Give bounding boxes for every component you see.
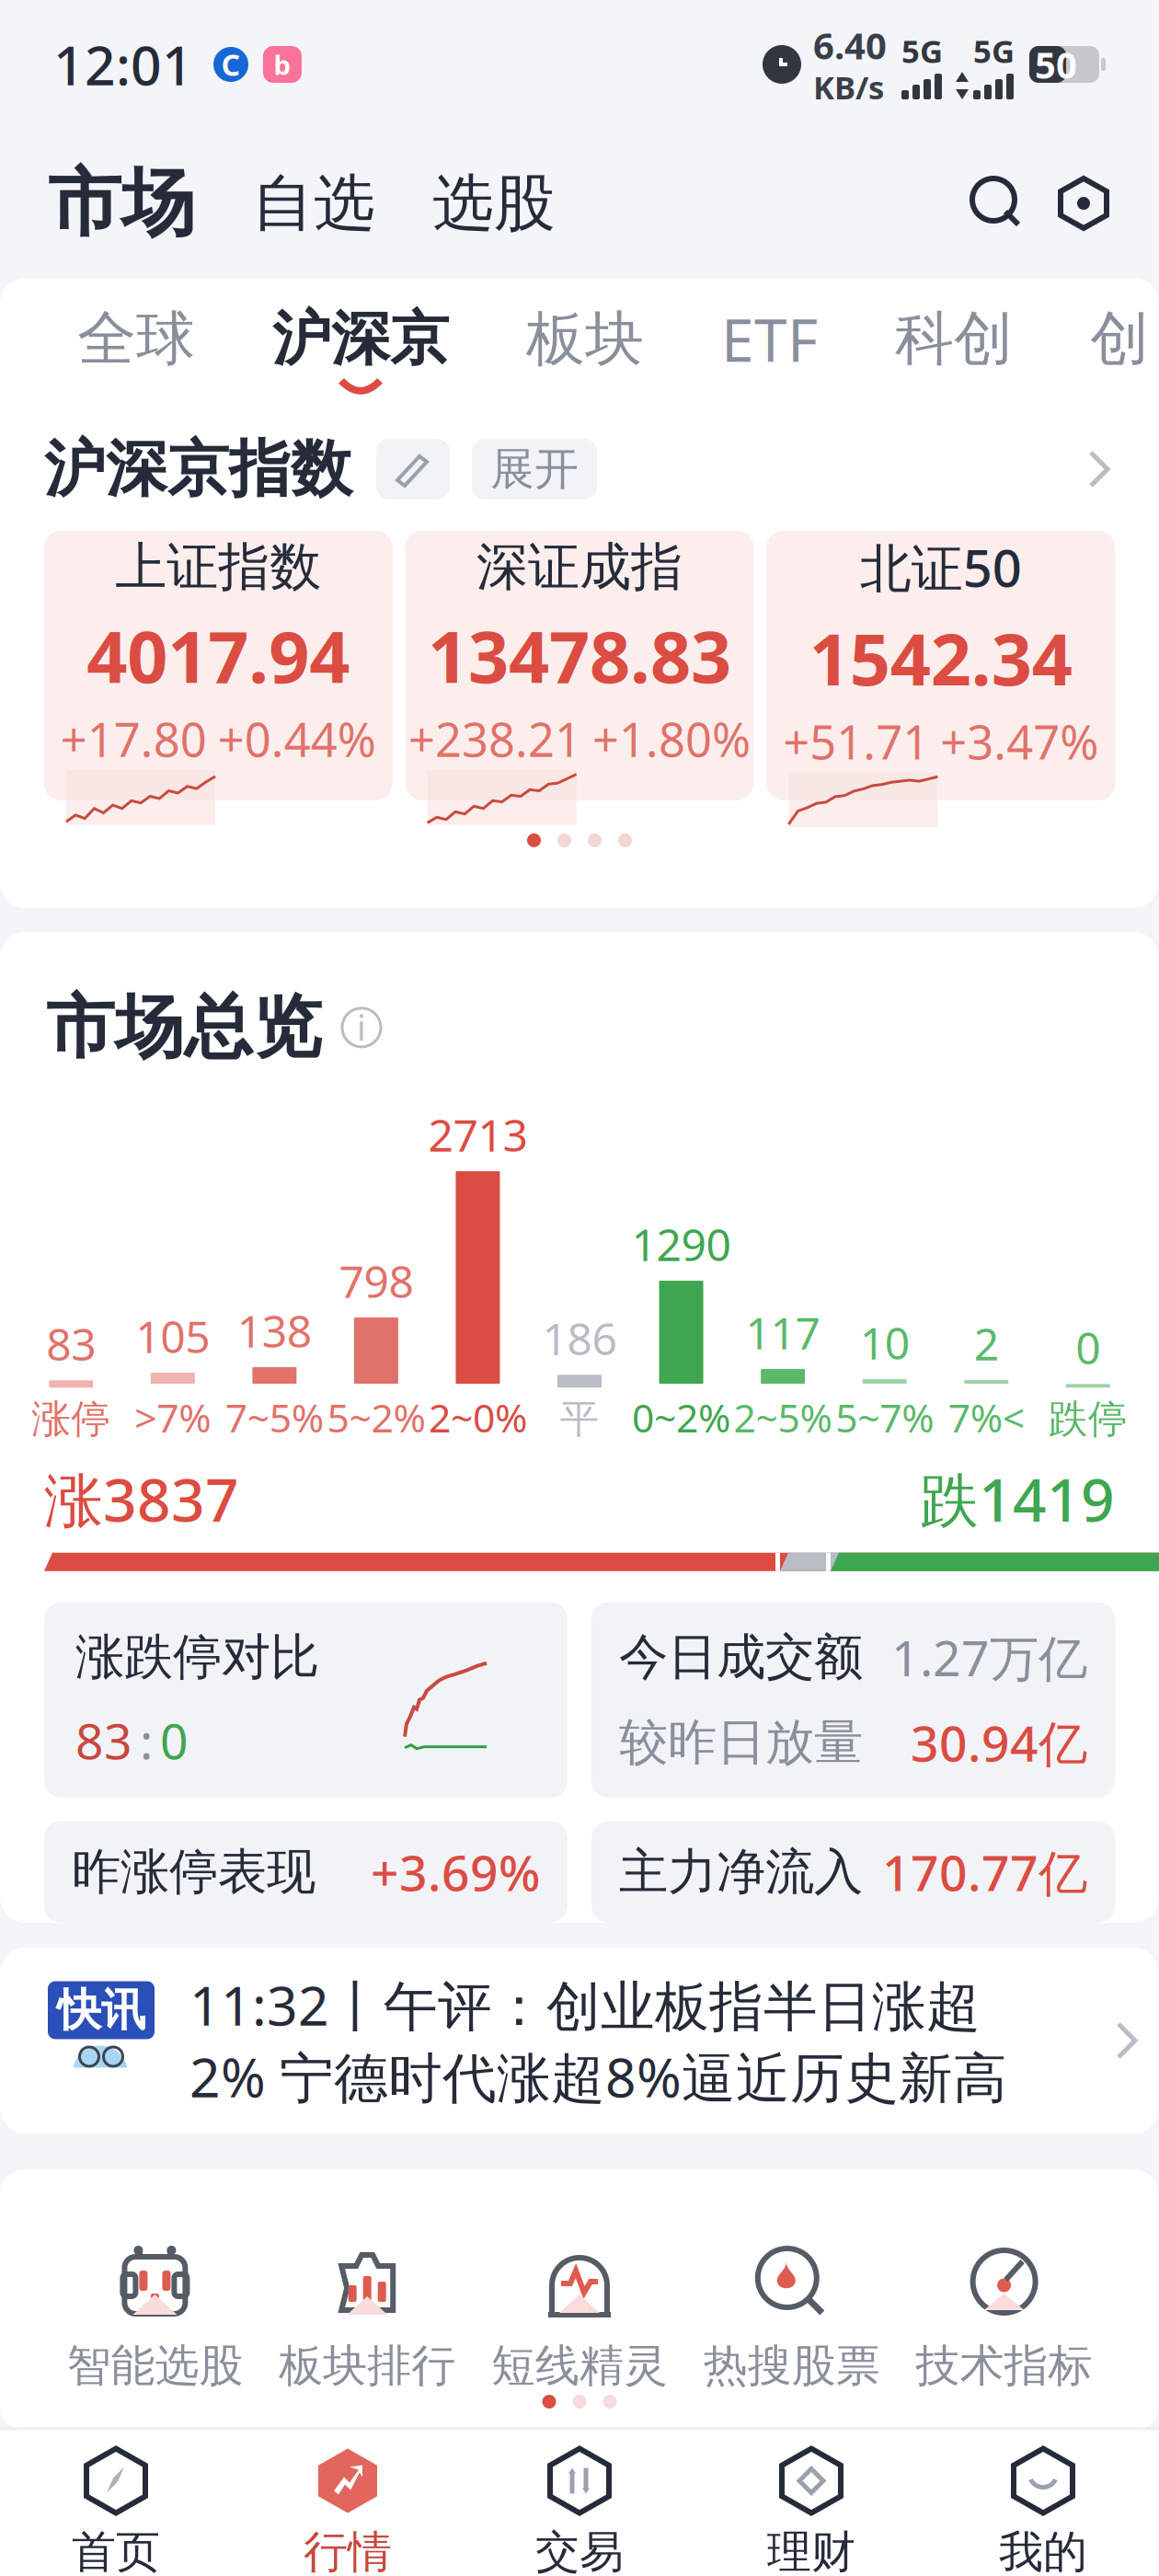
button[interactable]: 涨跌停对比	[44, 1602, 568, 1797]
staticText: 上证指数	[115, 535, 321, 599]
button[interactable]: 选股	[375, 166, 556, 241]
staticText: >7%	[135, 1391, 211, 1443]
staticText: 170.77亿	[882, 1839, 1087, 1904]
staticText: 市场总览	[46, 985, 322, 1070]
staticText: 选股	[432, 166, 556, 241]
button[interactable]: 板块排行	[261, 2247, 473, 2393]
staticText: 涨3837	[44, 1460, 239, 1538]
staticText: 今日成交额	[619, 1627, 863, 1687]
staticText: 创	[1090, 303, 1149, 375]
button[interactable]: 行情	[232, 2444, 464, 2576]
button[interactable]: 板块	[488, 303, 683, 397]
button[interactable]: 理财	[695, 2444, 927, 2576]
staticText: 2~5%	[734, 1391, 832, 1443]
staticText: 智能选股	[67, 2339, 243, 2393]
button[interactable]: 全球	[39, 303, 234, 397]
staticText: 沪深京指数	[44, 431, 352, 507]
staticText: 深证成指	[476, 535, 683, 599]
button[interactable]: 说明	[340, 1006, 383, 1049]
staticText: 798	[339, 1251, 413, 1310]
staticText: 跌1419	[920, 1460, 1115, 1538]
staticText: 涨停	[32, 1395, 111, 1443]
button[interactable]: 自选	[195, 166, 375, 241]
button[interactable]: 科创	[856, 303, 1051, 397]
staticText: 12:01	[53, 29, 193, 100]
staticText: 快讯	[57, 1983, 145, 2037]
staticText: 13478.83	[428, 608, 731, 702]
staticText: +3.69%	[371, 1839, 540, 1904]
staticText: KB/s	[813, 66, 884, 108]
staticText: 50	[1035, 40, 1077, 89]
staticText: 板块排行	[279, 2339, 456, 2393]
staticText: 0	[1075, 1318, 1100, 1377]
staticText: 30.94亿	[911, 1710, 1087, 1775]
button[interactable]: 深证成指	[405, 531, 754, 800]
staticText: +17.80	[61, 708, 207, 770]
staticText: C	[221, 45, 241, 84]
staticText: 沪深京	[272, 303, 449, 375]
staticText: 7%<	[948, 1391, 1024, 1443]
staticText: 5~2%	[327, 1391, 425, 1443]
staticText: 科创	[895, 303, 1013, 375]
staticText: 板块	[526, 303, 644, 375]
staticText: 行情	[304, 2525, 392, 2576]
staticText: 热搜股票	[703, 2339, 880, 2393]
staticText: 自选	[252, 166, 375, 241]
button[interactable]: 短线精灵	[473, 2247, 686, 2393]
staticText: 主力净流入	[619, 1842, 863, 1902]
staticText: 4017.94	[87, 608, 350, 702]
staticText: +51.71	[783, 711, 929, 772]
button[interactable]: 编辑	[352, 439, 450, 499]
button[interactable]: 昨涨停表现	[44, 1821, 568, 1923]
staticText: 6.40	[813, 21, 887, 69]
button[interactable]: 搜索	[970, 176, 1025, 231]
button[interactable]: 沪深京	[234, 303, 488, 397]
button[interactable]: 交易	[464, 2444, 695, 2576]
staticText: 105	[135, 1307, 210, 1365]
button[interactable]: 技术指标	[898, 2247, 1110, 2393]
staticText: 5G	[973, 29, 1015, 72]
button[interactable]: 主力净流入	[591, 1821, 1115, 1923]
staticText: 跌停	[1048, 1395, 1127, 1443]
staticText: 83	[46, 1314, 96, 1373]
staticText: 理财	[767, 2525, 855, 2576]
staticText: 2~0%	[429, 1391, 527, 1443]
button[interactable]: 智能选股	[49, 2247, 261, 2393]
staticText: 0	[160, 1708, 189, 1773]
staticText: 短线精灵	[491, 2339, 668, 2393]
staticText: 1.27万亿	[891, 1625, 1087, 1690]
button[interactable]: 市场	[48, 158, 195, 249]
staticText: +3.47%	[940, 711, 1098, 772]
staticText: +238.21	[408, 708, 581, 770]
staticText: 1542.34	[809, 611, 1072, 705]
staticText: 83	[75, 1708, 132, 1773]
staticText: 5G	[901, 29, 943, 72]
button[interactable]: 创	[1051, 303, 1159, 397]
button[interactable]: 首页	[0, 2444, 232, 2576]
button[interactable]: 北证50	[767, 531, 1115, 800]
staticText: 10	[860, 1313, 909, 1372]
button[interactable]: ETF	[683, 300, 856, 400]
staticText: 0~2%	[632, 1391, 730, 1443]
staticText: 我的	[999, 2525, 1087, 2576]
staticText: 138	[237, 1301, 312, 1360]
staticText: ETF	[721, 300, 818, 378]
button[interactable]: 上证指数	[44, 531, 392, 800]
staticText: :	[140, 1708, 153, 1773]
button[interactable]: 快讯	[0, 1948, 1159, 2133]
button[interactable]: 我的	[927, 2444, 1159, 2576]
staticText: 平	[560, 1395, 599, 1443]
staticText: 展开	[490, 442, 579, 496]
staticText: 交易	[535, 2525, 624, 2576]
staticText: 186	[542, 1309, 617, 1367]
staticText: 全球	[77, 303, 195, 375]
button[interactable]: 展开	[450, 439, 597, 499]
staticText: i	[357, 1005, 366, 1050]
staticText: 昨涨停表现	[72, 1842, 316, 1902]
button[interactable]: 设置	[1025, 174, 1111, 233]
button[interactable]: 热搜股票	[686, 2247, 898, 2393]
staticText: 涨跌停对比	[75, 1627, 319, 1687]
button[interactable]: 今日成交额	[591, 1602, 1115, 1797]
staticText: 北证50	[860, 533, 1022, 601]
staticText: 首页	[72, 2525, 160, 2576]
